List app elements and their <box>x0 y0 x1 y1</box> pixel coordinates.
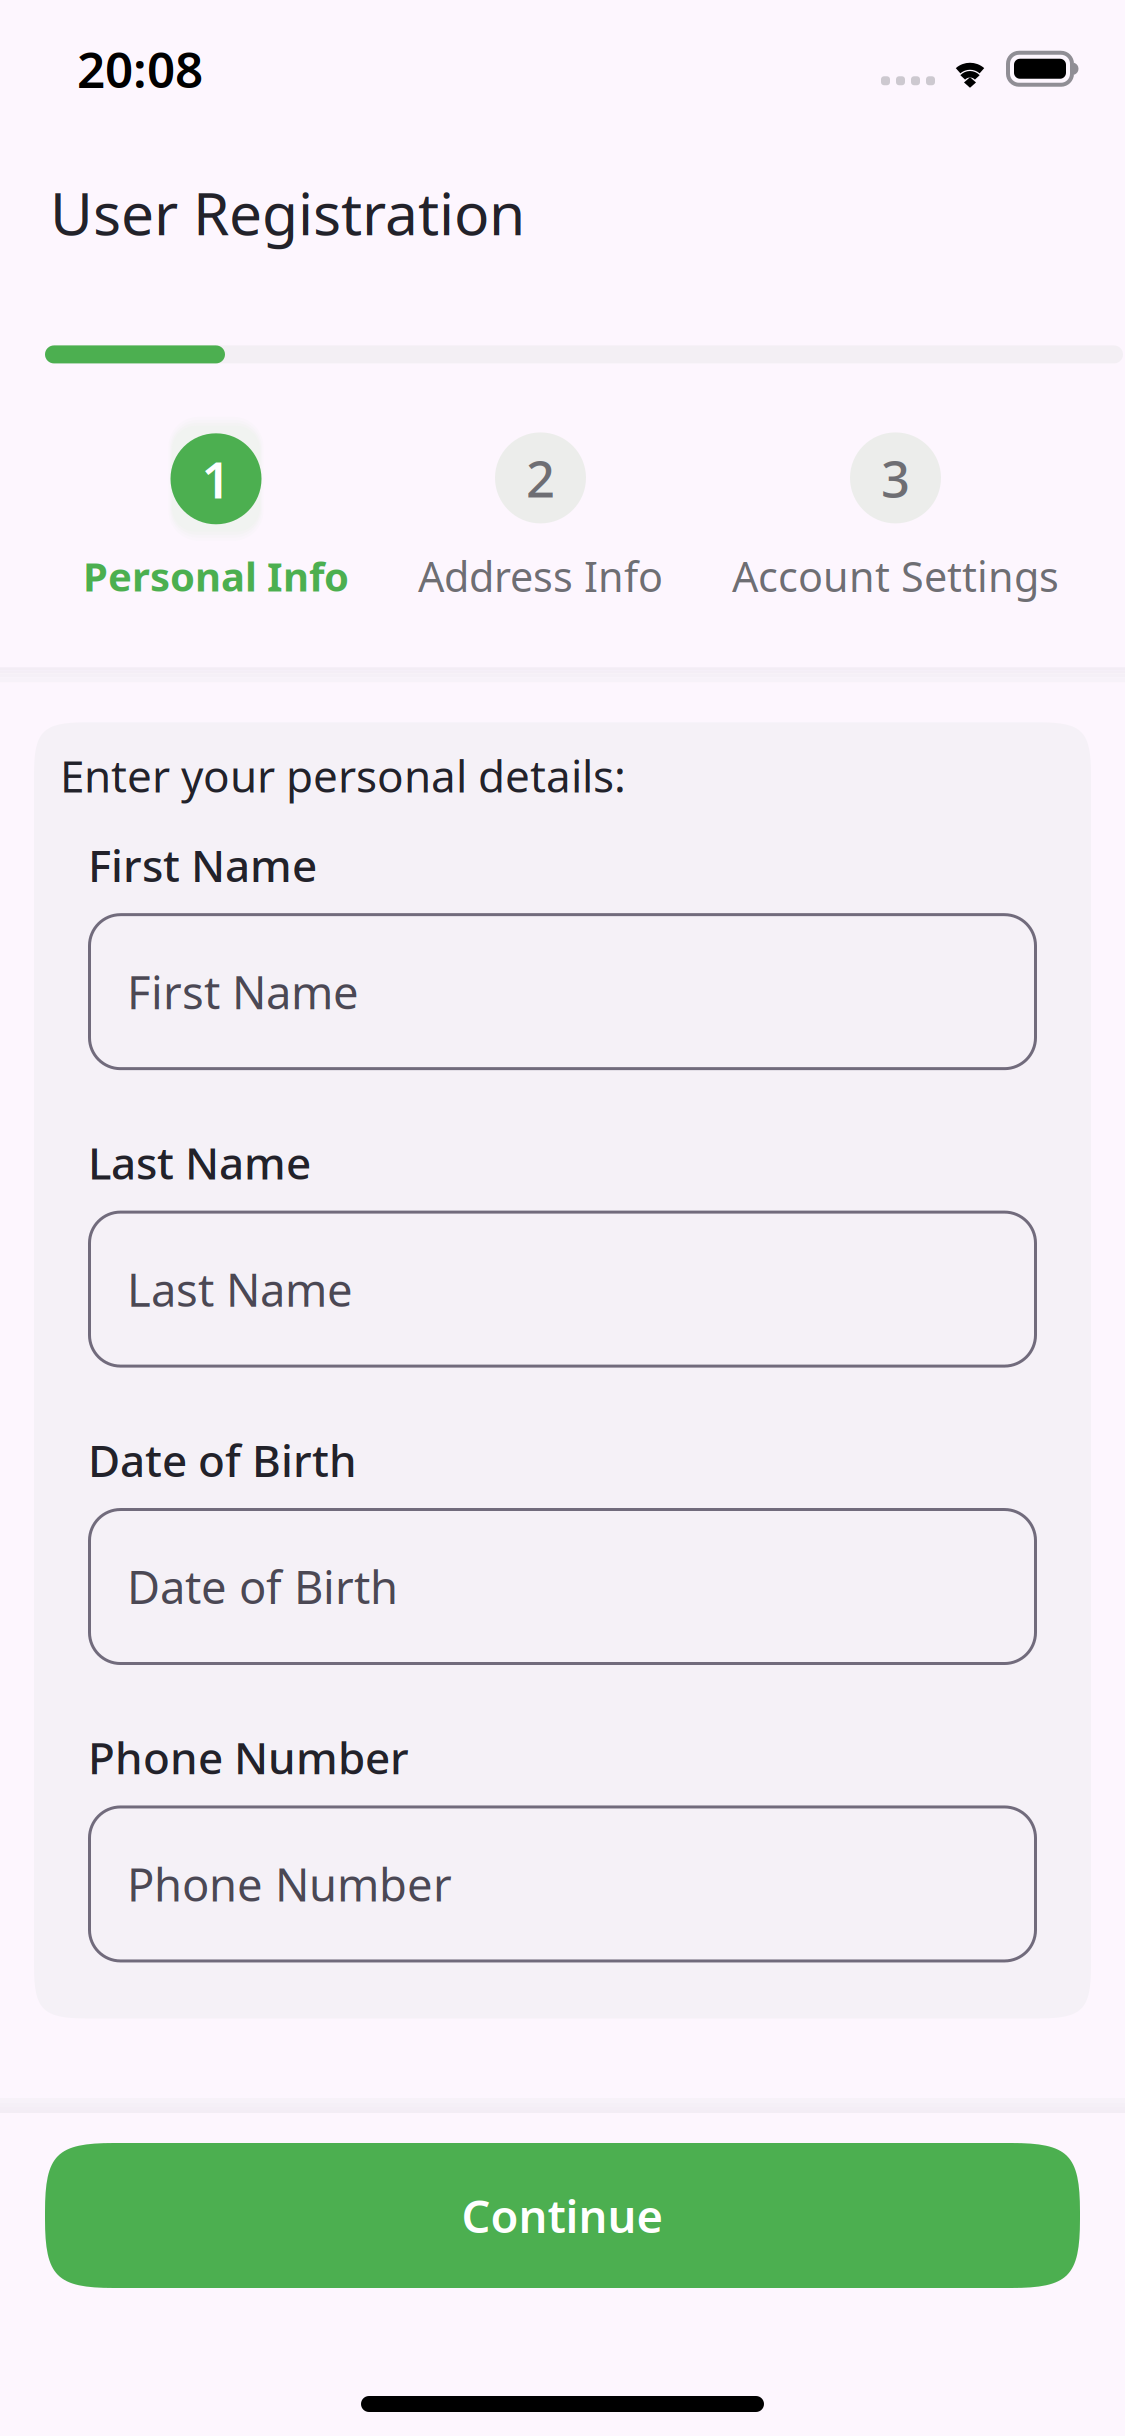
button[interactable]: Last Name <box>88 1211 1037 1368</box>
button[interactable]: 3 <box>732 432 1059 603</box>
staticText: Last Name <box>88 1133 311 1192</box>
staticText: 20:08 <box>77 36 203 101</box>
button[interactable]: 2 <box>418 432 663 603</box>
staticText: 1 <box>201 445 230 512</box>
staticText: Account Settings <box>732 548 1059 603</box>
button[interactable]: First Name <box>88 913 1037 1070</box>
button[interactable]: Date of Birth <box>88 1508 1037 1665</box>
staticText: 2 <box>526 444 555 512</box>
staticText: Date of Birth <box>127 1556 398 1617</box>
staticText: Personal Info <box>83 549 349 602</box>
staticText: Enter your personal details: <box>60 746 626 805</box>
staticText: User Registration <box>50 173 525 251</box>
staticText: Phone Number <box>88 1728 409 1786</box>
staticText: Last Name <box>127 1259 353 1319</box>
staticText: 3 <box>881 444 910 512</box>
button[interactable]: 1 <box>83 433 349 602</box>
staticText: First Name <box>88 836 317 894</box>
staticText: Phone Number <box>127 1854 452 1914</box>
staticText: Continue <box>461 2185 663 2246</box>
staticText: Address Info <box>418 548 663 603</box>
button[interactable]: Phone Number <box>88 1805 1037 1962</box>
staticText: First Name <box>127 962 359 1022</box>
staticText: Date of Birth <box>88 1431 357 1489</box>
button[interactable]: Continue <box>45 2143 1080 2288</box>
